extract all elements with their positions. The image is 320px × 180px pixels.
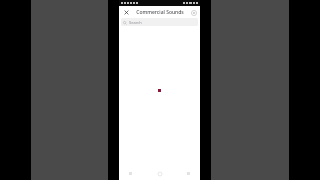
staticText: Commercial Sounds: [136, 9, 184, 16]
button[interactable]: Settings: [189, 8, 198, 17]
button[interactable]: Back: [125, 168, 136, 179]
staticText: Search: [129, 20, 142, 25]
button[interactable]: Search: [121, 18, 198, 26]
button[interactable]: Close: [121, 7, 131, 17]
button[interactable]: Home: [154, 168, 165, 179]
button[interactable]: Recents: [183, 168, 194, 179]
